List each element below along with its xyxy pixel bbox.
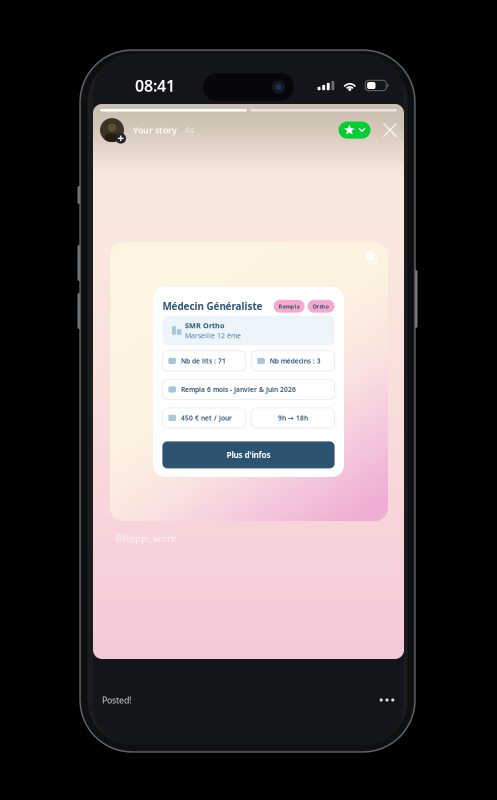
staticText: 450 € net / jour [181, 413, 232, 422]
staticText: Plus d'infos [226, 449, 270, 461]
button[interactable]: Duplicate [362, 248, 378, 264]
button[interactable]: Story highlights [339, 122, 370, 139]
staticText: 4s [185, 125, 194, 136]
staticText: Ortho [313, 302, 330, 310]
staticText: Rempla 6 mois - Janvier & Juin 2026 [181, 385, 296, 394]
staticText: Nb de lits : 71 [181, 356, 226, 365]
staticText: Médecin Généraliste [162, 299, 262, 313]
staticText: Posted! [102, 694, 131, 706]
button[interactable]: Close [380, 120, 400, 140]
staticText: Nb médecins : 3 [270, 356, 321, 365]
staticText: Rempla [279, 302, 300, 310]
staticText: Marseille 12 ème [185, 331, 241, 340]
button[interactable]: More options [374, 688, 400, 712]
staticText: 08:41 [135, 75, 175, 96]
staticText: SMR Ortho [185, 321, 225, 330]
staticText: Your story [133, 124, 177, 136]
button[interactable]: Plus d'infos [162, 441, 335, 468]
staticText: @hoppi.work [115, 532, 176, 545]
staticText: 9h → 18h [278, 413, 308, 422]
